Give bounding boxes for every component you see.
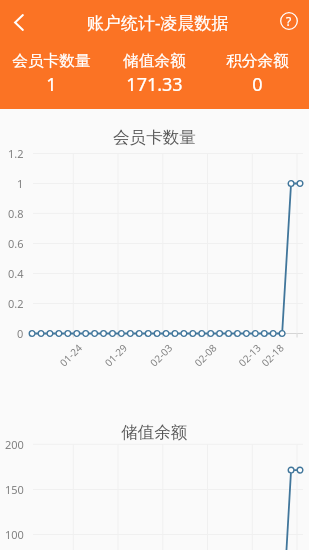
button[interactable]: 储值余额 <box>103 51 206 97</box>
staticText: 储值余额 <box>123 51 186 71</box>
staticText: 会员卡数量 <box>113 127 196 148</box>
button[interactable]: Back <box>0 0 38 44</box>
button[interactable]: Help <box>268 0 309 44</box>
staticText: 会员卡数量 <box>12 51 91 71</box>
staticText: 积分余额 <box>226 51 289 71</box>
staticText: 0 <box>252 72 263 97</box>
staticText: 储值余额 <box>121 422 188 443</box>
staticText: 171.33 <box>126 72 183 97</box>
staticText: ? <box>286 13 292 29</box>
staticText: 账户统计-凌晨数据 <box>87 11 229 34</box>
button[interactable]: 会员卡数量 <box>0 51 103 97</box>
button[interactable]: 积分余额 <box>206 51 309 97</box>
staticText: 1 <box>46 72 57 97</box>
